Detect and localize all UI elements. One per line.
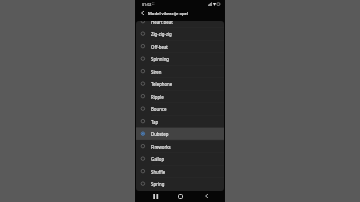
button[interactable]: Off-beat	[136, 40, 224, 53]
button[interactable]: Siren	[136, 65, 224, 78]
button[interactable]: Dubstep	[136, 127, 224, 140]
button[interactable]: Recent apps	[150, 191, 160, 201]
staticText: Heart beat	[151, 21, 173, 25]
button[interactable]: Heart beat	[136, 21, 224, 28]
button[interactable]: Navigate up	[136, 8, 147, 19]
button[interactable]: Shuffle	[136, 165, 224, 178]
staticText: Zig-zig-zig	[151, 31, 172, 37]
staticText: Tap	[151, 119, 159, 125]
button[interactable]: Gallop	[136, 152, 224, 165]
staticText: Fireworks	[151, 144, 171, 150]
button[interactable]: Ripple	[136, 90, 224, 103]
staticText: Spinning	[151, 56, 170, 62]
button[interactable]: Spring	[136, 177, 224, 190]
button[interactable]: Telephone	[136, 77, 224, 90]
staticText: Ripple	[151, 94, 164, 100]
button[interactable]: Tap	[136, 115, 224, 128]
staticText: Siren	[151, 69, 162, 75]
staticText: Dubstep	[151, 131, 169, 137]
staticText: Off-beat	[151, 44, 168, 50]
button[interactable]: Bounce	[136, 102, 224, 115]
button[interactable]: Zig-zig-zig	[136, 27, 224, 40]
button[interactable]: Fireworks	[136, 140, 224, 153]
button[interactable]: Back	[201, 191, 211, 201]
staticText: 01:02	[142, 2, 152, 7]
staticText: Shuffle	[151, 169, 166, 175]
staticText: Model vibracije opel	[148, 11, 189, 17]
staticText: Gallop	[151, 156, 165, 162]
button[interactable]: Spinning	[136, 52, 224, 65]
button[interactable]: Home	[176, 191, 186, 201]
staticText: Spring	[151, 181, 165, 187]
staticText: Bounce	[151, 106, 167, 112]
staticText: Telephone	[151, 81, 173, 87]
